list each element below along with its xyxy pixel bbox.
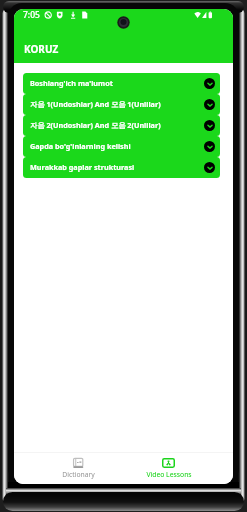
button[interactable]: Video Lessons (123, 453, 214, 484)
button[interactable]: 자음 1(Undoshlar) And 모음 1(Unlilar) (23, 94, 220, 115)
button[interactable]: 자음 2(Undoshlar) And 모음 2(Unlilar) (23, 115, 220, 136)
staticText: KORUZ (24, 42, 59, 56)
button[interactable]: Dictionary (33, 453, 123, 484)
staticText: Boshlang'ich ma'lumot (30, 78, 204, 88)
staticText: 7:05 (23, 9, 40, 21)
button[interactable]: Murakkab gaplar strukturasi (23, 157, 220, 178)
other: Video Lessons (162, 458, 175, 468)
staticText: Murakkab gaplar strukturasi (30, 162, 204, 172)
staticText: Video Lessons (146, 470, 192, 479)
button[interactable]: Gapda bo'g'inlarning kelishi (23, 136, 220, 157)
staticText: Dictionary (62, 470, 95, 479)
staticText: 자음 1(Undoshlar) And 모음 1(Unlilar) (30, 99, 204, 109)
staticText: 자음 2(Undoshlar) And 모음 2(Unlilar) (30, 120, 204, 130)
staticText: Gapda bo'g'inlarning kelishi (30, 141, 204, 151)
other: Dictionary (73, 458, 84, 468)
button[interactable]: Boshlang'ich ma'lumot (23, 73, 220, 94)
